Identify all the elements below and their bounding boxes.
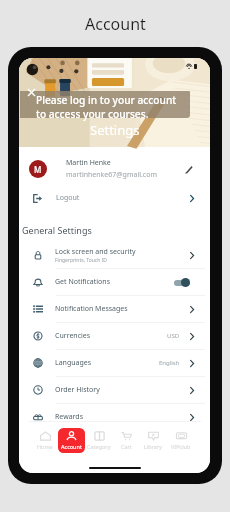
staticText: Cart — [121, 443, 132, 450]
staticText: Category — [87, 443, 111, 450]
button[interactable]: Edit profile — [184, 165, 193, 174]
staticText: Account — [85, 13, 146, 35]
staticText: Notification Messages — [55, 304, 128, 314]
staticText: USD — [167, 332, 180, 340]
staticText: Account — [61, 443, 82, 450]
button[interactable]: Logout — [19, 185, 210, 211]
staticText: Order History — [55, 385, 100, 395]
button[interactable]: Order History — [19, 377, 210, 404]
staticText: martinhenke67@gmail.com — [66, 170, 158, 180]
button[interactable]: Languages — [19, 350, 210, 377]
staticText: Logout — [56, 193, 80, 203]
button[interactable]: Category — [85, 428, 112, 453]
button[interactable]: Home — [31, 428, 58, 453]
staticText: Rewards — [55, 412, 83, 422]
staticText: Languages — [55, 358, 92, 368]
button[interactable]: Rewards — [19, 404, 210, 431]
staticText: Lock screen and security — [55, 247, 136, 257]
staticText: Settings — [90, 121, 140, 139]
button[interactable]: Library — [140, 428, 167, 453]
staticText: Martin Henke — [66, 158, 111, 168]
staticText: Currencies — [55, 331, 91, 341]
staticText: M — [34, 164, 42, 175]
button[interactable]: Notification Messages — [19, 296, 210, 323]
button[interactable]: Get Notifications — [19, 269, 210, 296]
button[interactable]: VIPclub — [167, 428, 194, 453]
staticText: English — [159, 359, 180, 367]
staticText: Fingerprints, Touch ID — [55, 257, 107, 264]
staticText: to access your courses. — [36, 107, 149, 121]
button[interactable]: Currencies — [19, 323, 210, 350]
staticText: Library — [144, 443, 163, 450]
button[interactable]: Lock screen and security — [19, 242, 210, 269]
button[interactable]: M — [19, 153, 210, 185]
staticText: Please log in to your account — [36, 93, 177, 107]
button[interactable]: Close banner — [28, 89, 35, 96]
staticText: Home — [37, 443, 53, 450]
staticText: VIPclub — [171, 443, 191, 450]
staticText: General Settings — [22, 224, 92, 236]
button[interactable]: Cart — [113, 428, 140, 453]
staticText: Get Notifications — [55, 277, 111, 287]
button[interactable]: Account — [58, 428, 85, 453]
